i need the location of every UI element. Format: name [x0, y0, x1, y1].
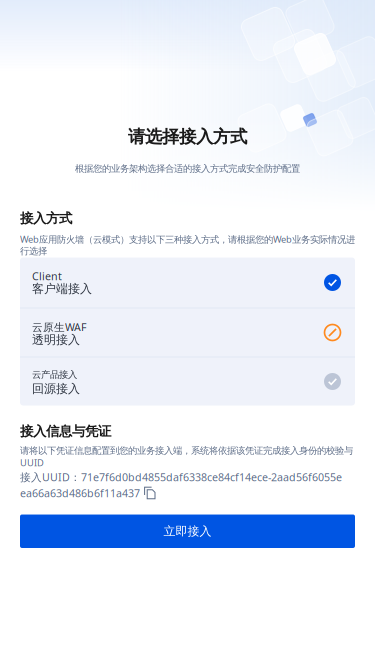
- button[interactable]: 立即接入: [20, 514, 355, 548]
- staticText: 立即接入: [163, 524, 211, 539]
- staticText: 回源接入: [32, 381, 80, 396]
- staticText: 请选择接入方式: [128, 126, 247, 147]
- staticText: 客户端接入: [32, 281, 92, 296]
- staticText: 接入UUID：71e7f6d0bd4855daf6338ce84cf14ece-…: [20, 470, 342, 484]
- staticText: ea66a63d486b6f11a437: [20, 486, 140, 500]
- staticText: 接入方式: [20, 210, 72, 226]
- button[interactable]: 云原生WAF: [20, 308, 355, 356]
- staticText: 透明接入: [32, 332, 80, 347]
- staticText: 请将以下凭证信息配置到您的业务接入端，系统将依据该凭证完成接入身份的校验与UUI…: [20, 445, 353, 469]
- staticText: 云产品接入: [32, 369, 77, 380]
- button[interactable]: 复制接入 UUID: [144, 487, 157, 500]
- button[interactable]: Client: [20, 257, 355, 307]
- button[interactable]: 云产品接入: [20, 357, 355, 405]
- staticText: Client: [32, 269, 62, 283]
- staticText: 接入信息与凭证: [20, 423, 111, 439]
- staticText: Web应用防火墙（云模式）支持以下三种接入方式，请根据您的Web业务实际情况进行…: [20, 233, 355, 257]
- staticText: 云原生WAF: [32, 320, 87, 334]
- staticText: 根据您的业务架构选择合适的接入方式完成安全防护配置: [75, 163, 300, 174]
